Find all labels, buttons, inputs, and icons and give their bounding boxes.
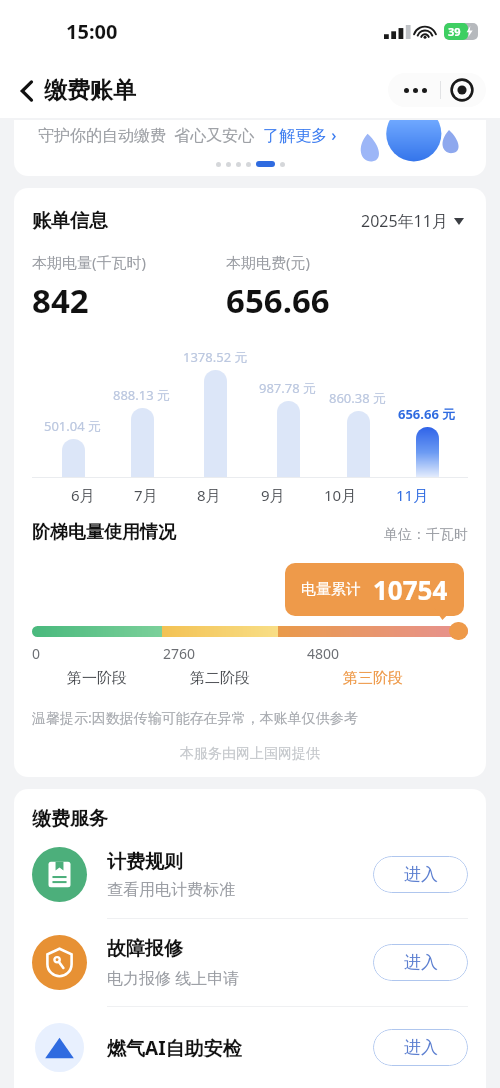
- staticText: 656.66: [226, 278, 330, 323]
- staticText: 账单信息: [32, 209, 108, 233]
- staticText: 温馨提示:因数据传输可能存在异常，本账单仅供参考: [32, 708, 358, 727]
- staticText: 阶梯电量使用情况: [32, 521, 176, 544]
- button[interactable]: 进入: [373, 1029, 468, 1066]
- button[interactable]: Target: [450, 78, 474, 102]
- staticText: 电量累计: [301, 580, 361, 599]
- staticText: 39: [448, 24, 461, 39]
- staticText: 2025年11月: [361, 210, 448, 232]
- button[interactable]: More options: [400, 82, 431, 99]
- staticText: 进入: [404, 864, 438, 885]
- staticText: 单位：千瓦时: [384, 526, 468, 544]
- staticText: 2760: [163, 644, 196, 663]
- button[interactable]: Back: [16, 72, 140, 109]
- staticText: 故障报修: [107, 937, 183, 961]
- staticText: 7月: [134, 485, 158, 505]
- button[interactable]: 故障报修: [32, 919, 468, 1006]
- staticText: 501.04 元: [44, 417, 102, 435]
- staticText: 守护你的自动缴费 省心又安心: [38, 124, 263, 146]
- staticText: 8月: [197, 485, 221, 505]
- staticText: 第一阶段: [67, 669, 127, 688]
- staticText: 11月: [396, 485, 429, 505]
- button[interactable]: 进入: [373, 856, 468, 893]
- button[interactable]: 2025年11月: [357, 206, 468, 236]
- button[interactable]: 电量累计: [301, 572, 448, 607]
- staticText: 842: [32, 278, 89, 323]
- staticText: 1378.52 元: [183, 348, 248, 366]
- staticText: 进入: [404, 1037, 438, 1058]
- staticText: 了解更多 ›: [263, 124, 337, 146]
- staticText: 缴费服务: [32, 807, 108, 831]
- staticText: 10754: [373, 572, 448, 607]
- staticText: 本期电量(千瓦时): [32, 252, 147, 272]
- staticText: 电力报修 线上申请: [107, 967, 240, 989]
- staticText: 656.66 元: [398, 405, 456, 423]
- staticText: 15:00: [66, 18, 118, 45]
- button[interactable]: 计费规则: [32, 831, 468, 918]
- staticText: 888.13 元: [113, 386, 171, 404]
- staticText: 9月: [261, 485, 285, 505]
- button[interactable]: 进入: [373, 944, 468, 981]
- staticText: 860.38 元: [329, 389, 387, 407]
- staticText: 计费规则: [107, 850, 183, 874]
- staticText: 查看用电计费标准: [107, 880, 235, 900]
- staticText: 第二阶段: [190, 669, 250, 688]
- button[interactable]: 燃气AI自助安检: [32, 1007, 468, 1088]
- staticText: 987.78 元: [259, 379, 317, 397]
- staticText: 进入: [404, 952, 438, 973]
- staticText: 燃气AI自助安检: [107, 1035, 242, 1061]
- staticText: 缴费账单: [44, 76, 136, 105]
- staticText: 4800: [307, 644, 340, 663]
- button[interactable]: 守护你的自动缴费 省心又安心: [14, 120, 486, 176]
- staticText: 6月: [71, 485, 95, 505]
- staticText: 本期电费(元): [226, 252, 311, 272]
- staticText: 0: [32, 644, 41, 663]
- other: Back: [20, 79, 34, 103]
- staticText: 第三阶段: [343, 669, 403, 688]
- staticText: 10月: [324, 485, 357, 505]
- staticText: 本服务由网上国网提供: [32, 745, 468, 763]
